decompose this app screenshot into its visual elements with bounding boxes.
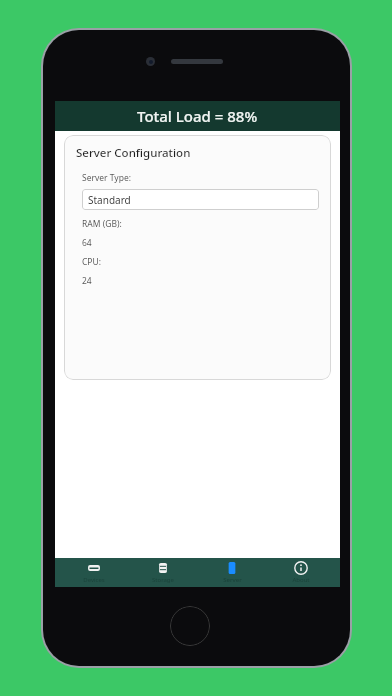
staticText: About xyxy=(292,576,310,584)
button[interactable]: Home xyxy=(170,606,210,646)
staticText: Storage xyxy=(152,576,174,584)
staticText: RAM (GB): xyxy=(82,218,122,230)
staticText: Total Load = 88% xyxy=(137,106,258,126)
staticText: Server Type: xyxy=(82,172,131,184)
staticText: Standard xyxy=(88,193,131,207)
button[interactable]: Standard xyxy=(82,189,319,210)
staticText: CPU: xyxy=(82,256,102,268)
staticText: Devices xyxy=(83,576,105,584)
button[interactable]: Devices xyxy=(64,558,124,587)
staticText: 64 xyxy=(82,237,92,249)
staticText: 24 xyxy=(82,275,92,287)
button[interactable]: Server xyxy=(202,558,262,587)
button[interactable]: About xyxy=(271,558,331,587)
staticText: Server Configuration xyxy=(76,145,191,161)
button[interactable]: Storage xyxy=(133,558,193,587)
staticText: Server xyxy=(223,576,242,584)
